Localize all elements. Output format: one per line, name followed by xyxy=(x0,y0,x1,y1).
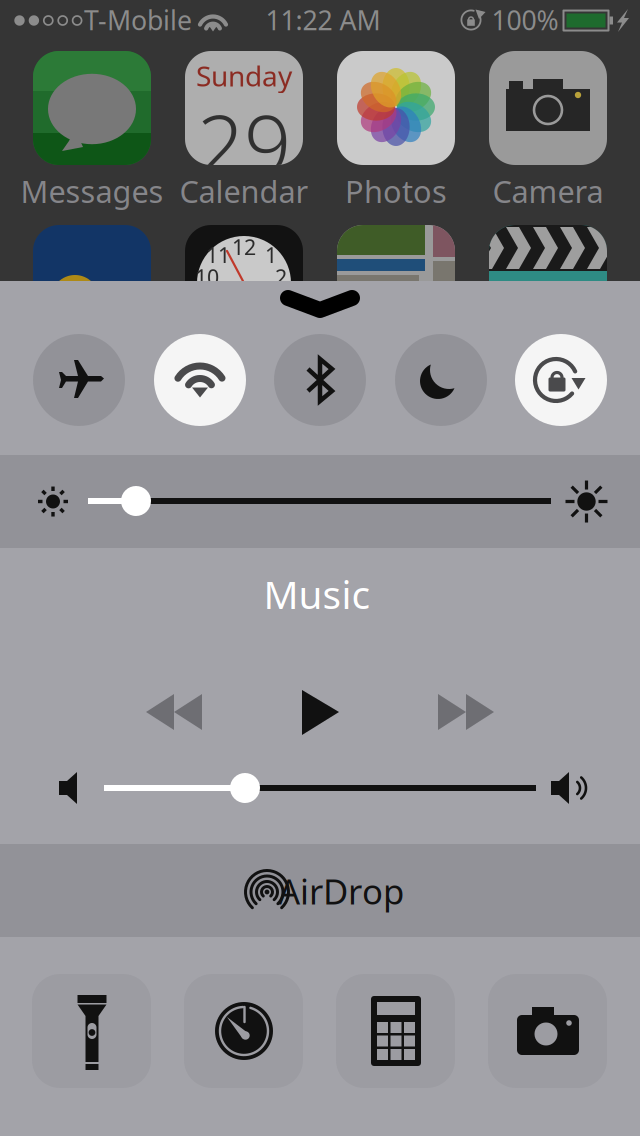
staticText: Sunday xyxy=(196,57,292,94)
staticText: 11 xyxy=(206,241,230,269)
staticText: Camera xyxy=(492,171,603,211)
staticText: 12 xyxy=(232,233,256,261)
staticText: AirDrop xyxy=(278,868,404,914)
staticText: Calendar xyxy=(179,171,308,211)
staticText: 2 xyxy=(275,263,287,291)
staticText: Photos xyxy=(345,171,447,211)
staticText: Messages xyxy=(20,171,163,211)
staticText: 1 xyxy=(265,241,277,269)
staticText: 10 xyxy=(195,263,219,291)
staticText: 11:22 AM xyxy=(265,2,380,38)
staticText: 29 xyxy=(197,88,291,198)
staticText: 100% xyxy=(491,2,558,38)
staticText: T-Mobile xyxy=(84,2,192,38)
staticText: Music xyxy=(263,568,370,620)
